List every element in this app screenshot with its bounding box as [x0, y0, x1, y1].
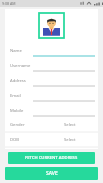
staticText: Select: [64, 137, 76, 143]
staticText: 9:08 AM: [2, 1, 16, 6]
button[interactable]: Mobile: [5, 103, 98, 118]
staticText: Gender: [10, 122, 25, 128]
button[interactable]: Gender: [5, 118, 98, 133]
staticText: DOB: [10, 137, 20, 143]
button[interactable]: Username: [5, 58, 98, 73]
staticText: Email: [10, 93, 21, 99]
button[interactable]: SAVE: [5, 167, 98, 180]
button[interactable]: DOB: [5, 133, 98, 148]
staticText: Select: [64, 122, 76, 128]
button[interactable]: FETCH CURRENT ADDRESS: [8, 152, 95, 164]
staticText: SAVE: [46, 170, 58, 177]
button[interactable]: Email: [5, 88, 98, 103]
staticText: Address: [10, 78, 26, 84]
staticText: Name: [10, 48, 22, 54]
button[interactable]: Address: [5, 73, 98, 88]
staticText: Username: [10, 63, 31, 69]
staticText: FETCH CURRENT ADDRESS: [25, 155, 78, 161]
staticText: Mobile: [10, 108, 24, 114]
button[interactable]: Profile photo: [39, 13, 64, 38]
button[interactable]: Name: [5, 43, 98, 58]
